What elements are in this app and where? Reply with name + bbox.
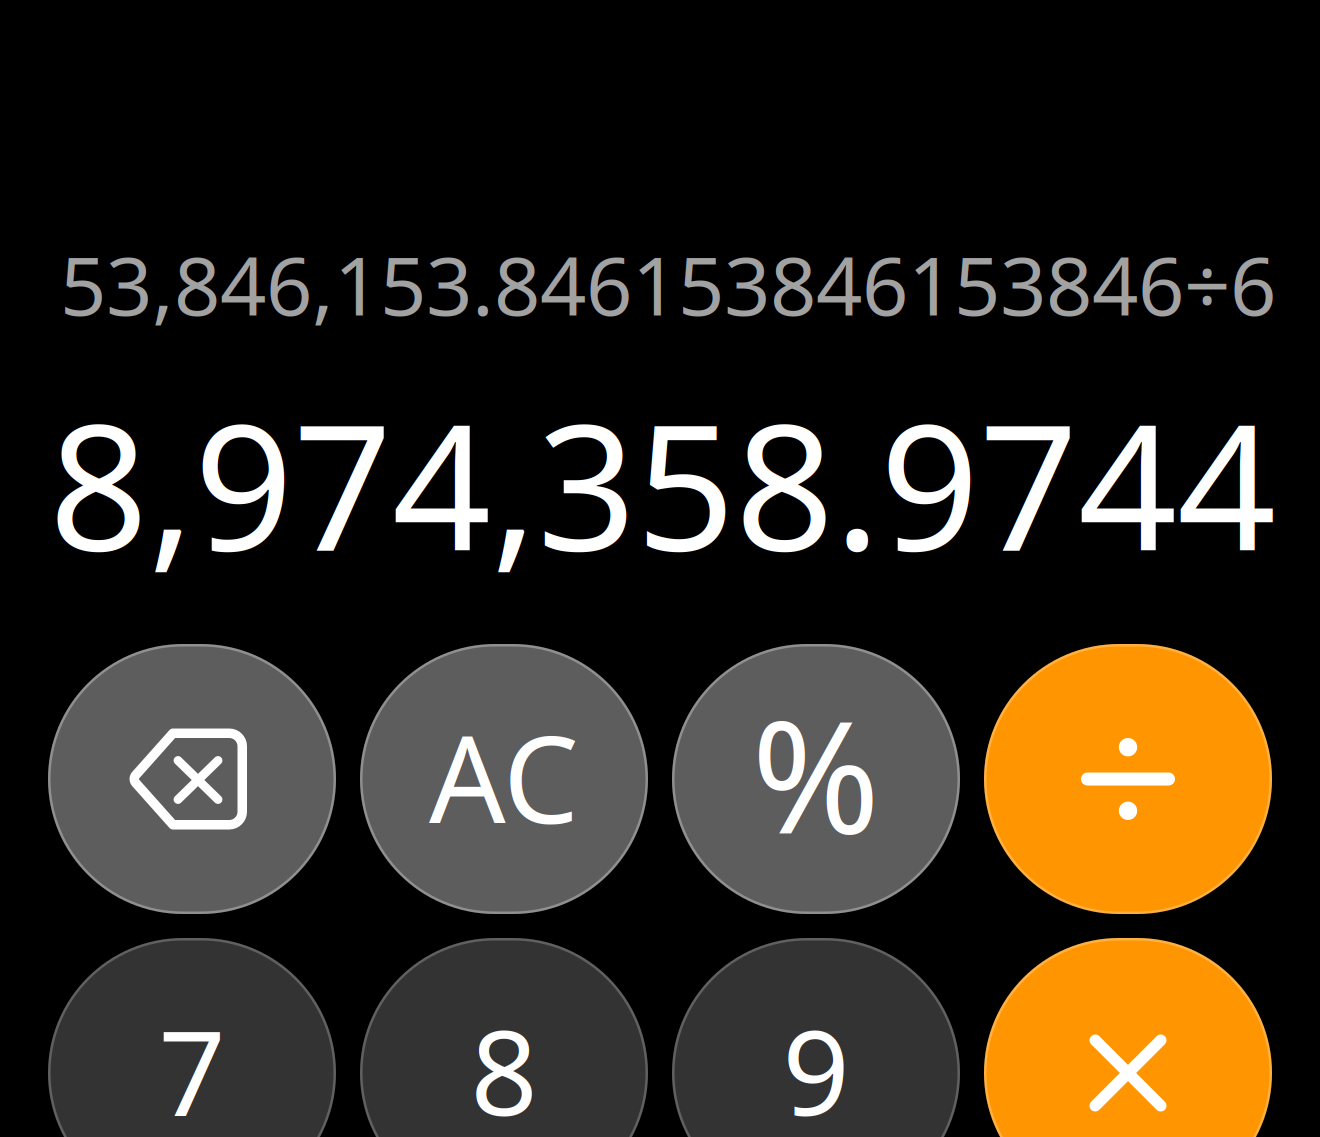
staticText: %	[751, 670, 880, 876]
button[interactable]: Divide	[984, 644, 1272, 914]
button[interactable]: Multiply	[984, 938, 1272, 1137]
button[interactable]: %	[672, 644, 960, 914]
staticText: 8	[470, 992, 537, 1137]
staticText: 9	[782, 992, 849, 1137]
staticText: 8,974,358.9744	[49, 368, 1276, 598]
button[interactable]: Delete	[48, 644, 336, 914]
button[interactable]: 7	[48, 938, 336, 1137]
staticText: 7	[158, 992, 225, 1137]
button[interactable]: AC	[360, 644, 648, 914]
staticText: 53,846,153.846153846153846÷6	[60, 229, 1276, 339]
staticText: AC	[429, 697, 579, 857]
button[interactable]: 8	[360, 938, 648, 1137]
button[interactable]: 9	[672, 938, 960, 1137]
